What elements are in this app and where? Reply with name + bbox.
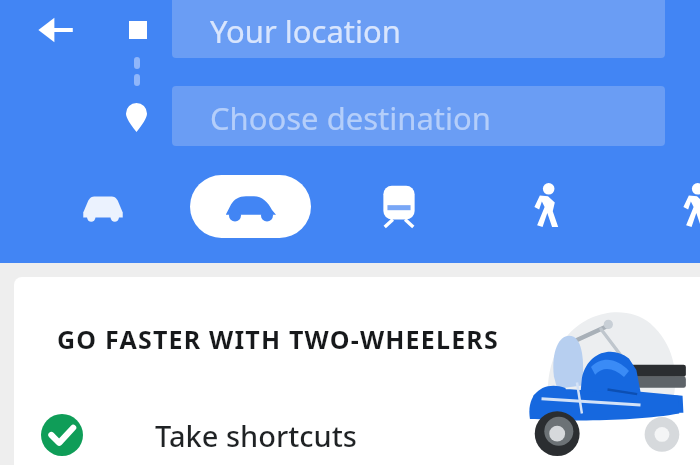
button[interactable]: Transit	[374, 181, 424, 231]
staticText: Choose destination	[210, 97, 491, 139]
button[interactable]: Two-wheeler	[190, 175, 311, 238]
button[interactable]: Your location	[172, 0, 665, 58]
staticText: Take shortcuts	[155, 416, 357, 455]
button[interactable]: Driving	[77, 180, 129, 232]
staticText: Your location	[210, 10, 401, 52]
button[interactable]: Walking	[523, 181, 573, 231]
button[interactable]: GO FASTER WITH TWO-WHEELERS	[14, 277, 700, 465]
button[interactable]: Cycling	[672, 181, 700, 231]
button[interactable]: Choose destination	[172, 86, 665, 146]
staticText: GO FASTER WITH TWO-WHEELERS	[57, 322, 499, 356]
button[interactable]: Back	[28, 2, 84, 58]
